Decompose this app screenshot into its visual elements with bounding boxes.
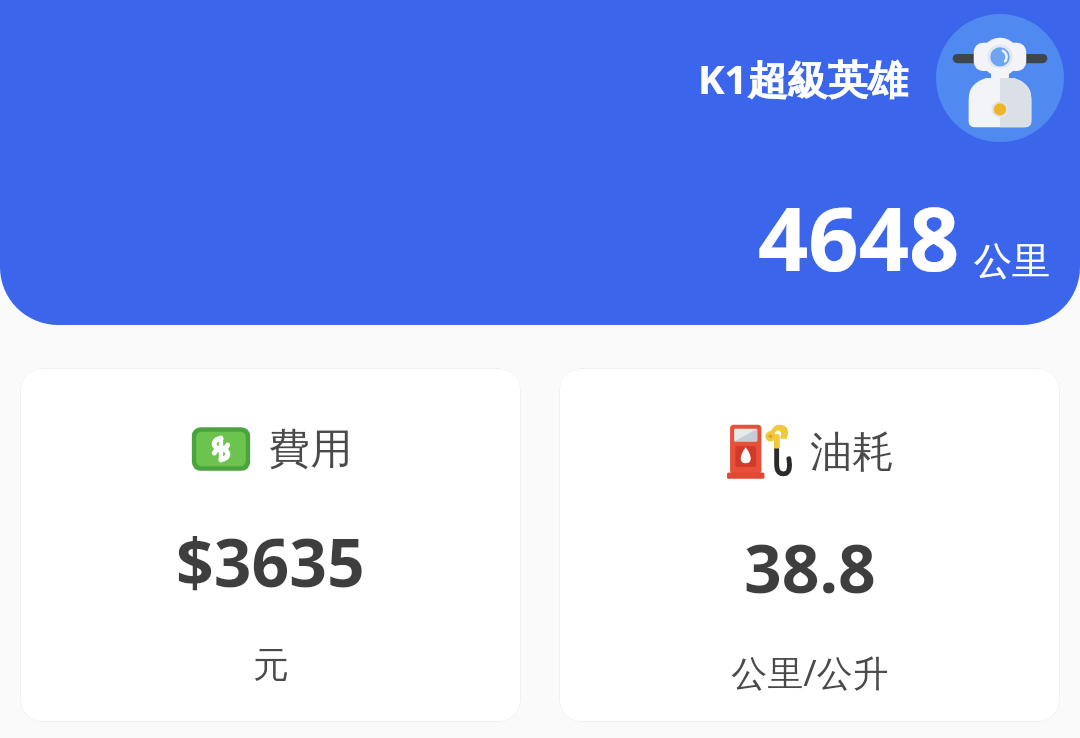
staticText: 元 xyxy=(253,642,289,687)
button[interactable]: K1超級英雄 xyxy=(0,0,1080,325)
other: Cost xyxy=(190,418,252,480)
staticText: 38.8 xyxy=(744,522,876,612)
staticText: 公里/公升 xyxy=(731,648,889,697)
staticText: 油耗 xyxy=(810,426,894,479)
other: Fuel consumption xyxy=(726,418,794,486)
button[interactable]: Fuel consumption xyxy=(559,368,1060,722)
staticText: 4648 xyxy=(758,177,960,297)
button[interactable]: Cost xyxy=(20,368,521,722)
staticText: $3635 xyxy=(176,516,365,606)
staticText: 費用 xyxy=(268,423,352,476)
staticText: K1超級英雄 xyxy=(698,51,908,106)
other: Scooter xyxy=(936,14,1064,142)
staticText: 公里 xyxy=(974,237,1050,285)
